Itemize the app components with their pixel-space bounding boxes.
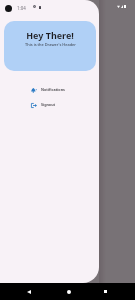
button[interactable]: Notifications xyxy=(0,82,99,97)
button[interactable]: Signout xyxy=(0,97,99,112)
button[interactable]: Home xyxy=(62,285,75,298)
staticText: Notifications xyxy=(41,87,65,92)
button[interactable]: Back xyxy=(22,285,35,298)
staticText: 1:04 xyxy=(17,5,26,11)
button[interactable]: Recent apps xyxy=(99,285,112,298)
staticText: Hey There! xyxy=(26,29,74,41)
staticText: This is the Drawer's Header xyxy=(25,42,76,47)
staticText: Signout xyxy=(41,102,56,107)
button[interactable]: Hey There! xyxy=(4,21,96,71)
